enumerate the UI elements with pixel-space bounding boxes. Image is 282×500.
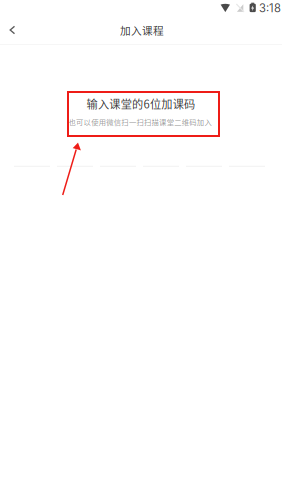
button[interactable]: Course code field [14,140,265,167]
button[interactable]: Back [0,19,29,41]
staticText: 加入课程 [120,22,164,38]
staticText: 3:18 [259,1,281,15]
staticText: 也可以使用微信扫一扫扫描课堂二维码加入 [68,116,211,127]
staticText: 输入课堂的6位加课码 [86,95,195,112]
